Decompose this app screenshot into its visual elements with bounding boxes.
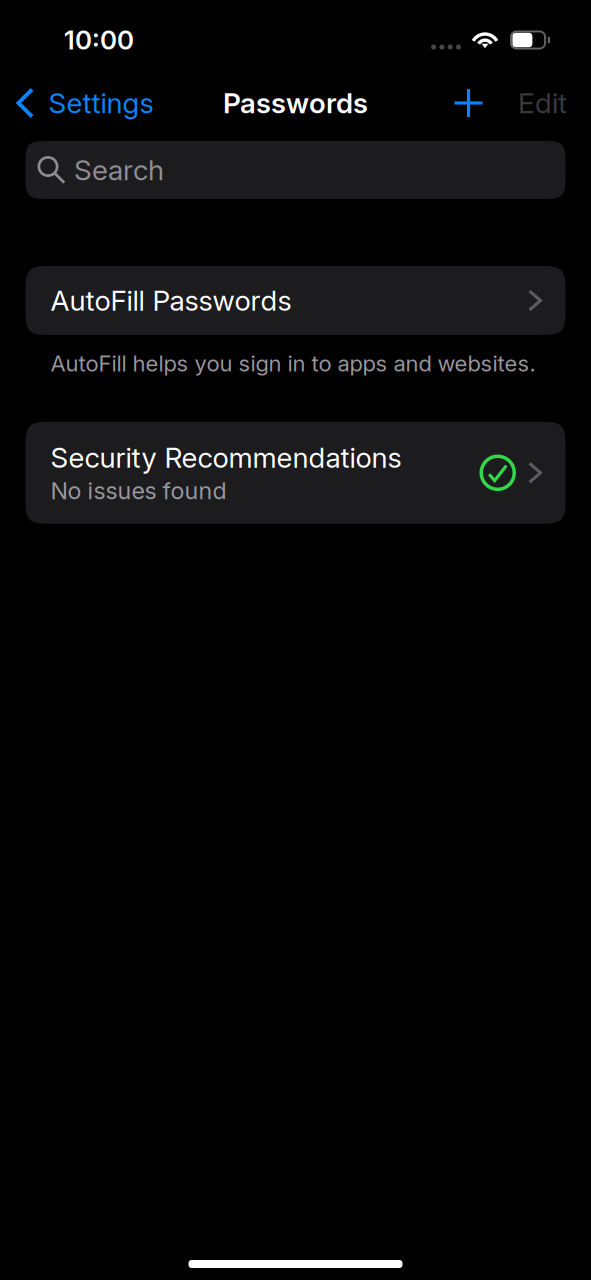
staticText: AutoFill Passwords	[50, 284, 291, 317]
staticText: 10:00	[64, 24, 134, 56]
staticText: No issues found	[50, 476, 226, 505]
staticText: Settings	[48, 86, 153, 120]
staticText: Edit	[518, 86, 567, 120]
button[interactable]: Security Recommendations	[25, 422, 565, 524]
staticText: Security Recommendations	[50, 441, 401, 474]
button[interactable]: Search	[25, 141, 565, 199]
button[interactable]: Settings	[0, 80, 153, 126]
button[interactable]: Add Password	[443, 80, 503, 125]
staticText: Search	[74, 153, 164, 187]
staticText: Passwords	[223, 86, 368, 120]
button[interactable]: Edit	[503, 78, 582, 128]
staticText: AutoFill helps you sign in to apps and w…	[50, 350, 535, 377]
button[interactable]: AutoFill Passwords	[25, 266, 565, 335]
